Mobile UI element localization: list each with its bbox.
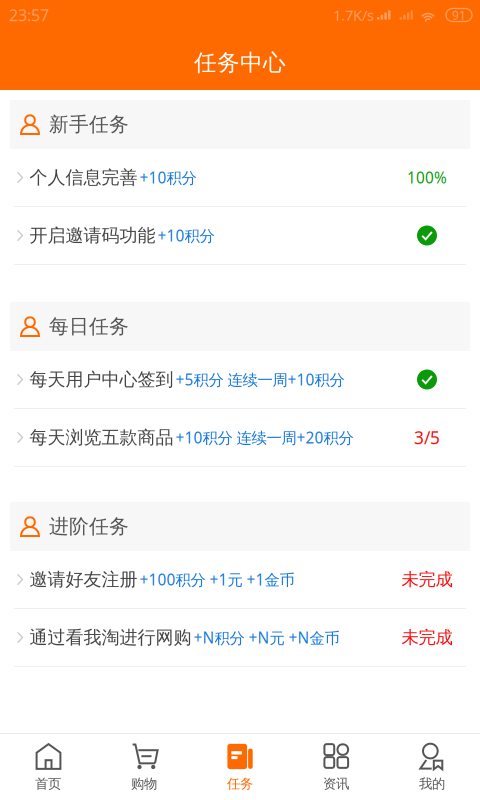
staticText: 连续一周+10积分	[228, 369, 345, 390]
staticText: +N元 +N金币	[249, 627, 340, 648]
button[interactable]: 邀请好友注册	[0, 551, 480, 609]
button[interactable]: 每天用户中心签到	[0, 351, 480, 409]
staticText: 进阶任务	[49, 514, 129, 539]
staticText: 我的	[419, 775, 445, 792]
staticText: 新手任务	[49, 112, 129, 137]
staticText: 购物	[131, 775, 157, 792]
staticText: 开启邀请码功能	[30, 224, 156, 247]
staticText: 每天浏览五款商品	[30, 426, 174, 449]
staticText: 任务中心	[194, 48, 286, 77]
staticText: 1.7K/s	[333, 5, 374, 25]
staticText: 每天用户中心签到	[30, 368, 174, 391]
button[interactable]: 通过看我淘进行网购	[0, 609, 480, 667]
staticText: 连续一周+20积分	[237, 427, 354, 448]
staticText: 每日任务	[49, 314, 129, 339]
staticText: +10积分	[176, 427, 233, 448]
button[interactable]: 任务	[192, 733, 288, 800]
staticText: 100%	[407, 167, 447, 188]
staticText: 23:57	[9, 4, 49, 26]
staticText: 未完成	[401, 627, 452, 648]
button[interactable]: 个人信息完善	[0, 149, 480, 207]
button[interactable]: 我的	[384, 733, 480, 800]
staticText: +N积分	[194, 627, 245, 648]
staticText: 3/5	[414, 426, 440, 449]
button[interactable]: 首页	[0, 733, 96, 800]
staticText: +10积分	[158, 225, 215, 246]
staticText: 91	[452, 7, 466, 23]
button[interactable]: 开启邀请码功能	[0, 207, 480, 265]
staticText: 首页	[35, 775, 61, 792]
staticText: 通过看我淘进行网购	[30, 626, 192, 649]
staticText: 资讯	[323, 775, 349, 792]
staticText: +1元 +1金币	[210, 569, 295, 590]
staticText: +10积分	[140, 167, 197, 188]
button[interactable]: 资讯	[288, 733, 384, 800]
staticText: +5积分	[176, 369, 224, 390]
staticText: +100积分	[140, 569, 206, 590]
staticText: 未完成	[401, 569, 452, 590]
staticText: 任务	[227, 775, 253, 792]
button[interactable]: 每天浏览五款商品	[0, 409, 480, 467]
button[interactable]: 购物	[96, 733, 192, 800]
staticText: 个人信息完善	[30, 166, 138, 189]
staticText: 邀请好友注册	[30, 568, 138, 591]
